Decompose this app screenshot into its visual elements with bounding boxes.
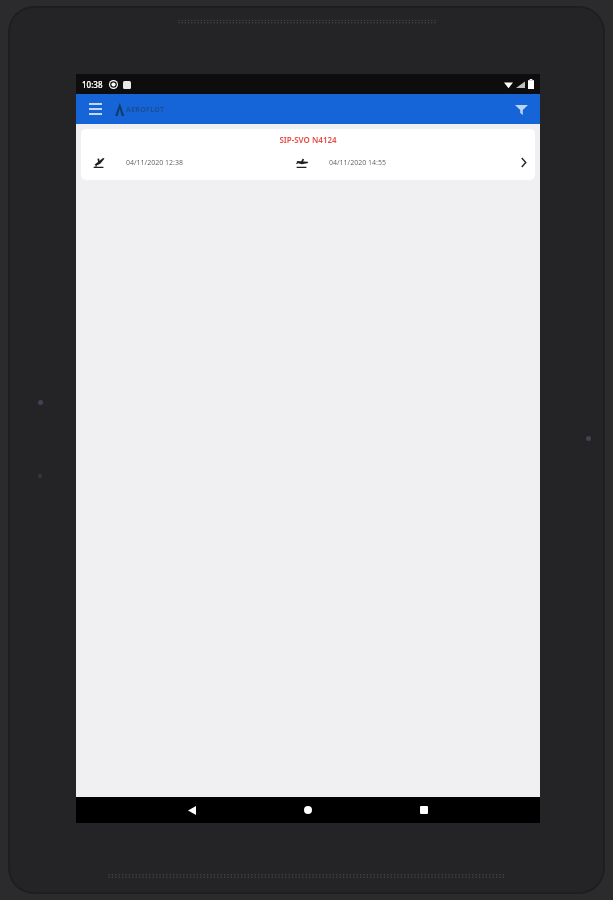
button[interactable]: Back	[179, 797, 205, 823]
button[interactable]: Recent apps	[411, 797, 437, 823]
button[interactable]: SIP-SVO N4124	[81, 129, 535, 180]
staticText: 04/11/2020 14:55	[329, 158, 386, 168]
button[interactable]: Filter	[510, 98, 532, 120]
staticText: AEROFLOT	[126, 105, 165, 115]
button[interactable]: Home	[295, 797, 321, 823]
staticText: 10:38	[82, 79, 103, 90]
staticText: SIP-SVO N4124	[81, 134, 535, 145]
staticText: 04/11/2020 12:38	[126, 158, 183, 168]
button[interactable]: Open navigation menu	[84, 98, 106, 120]
